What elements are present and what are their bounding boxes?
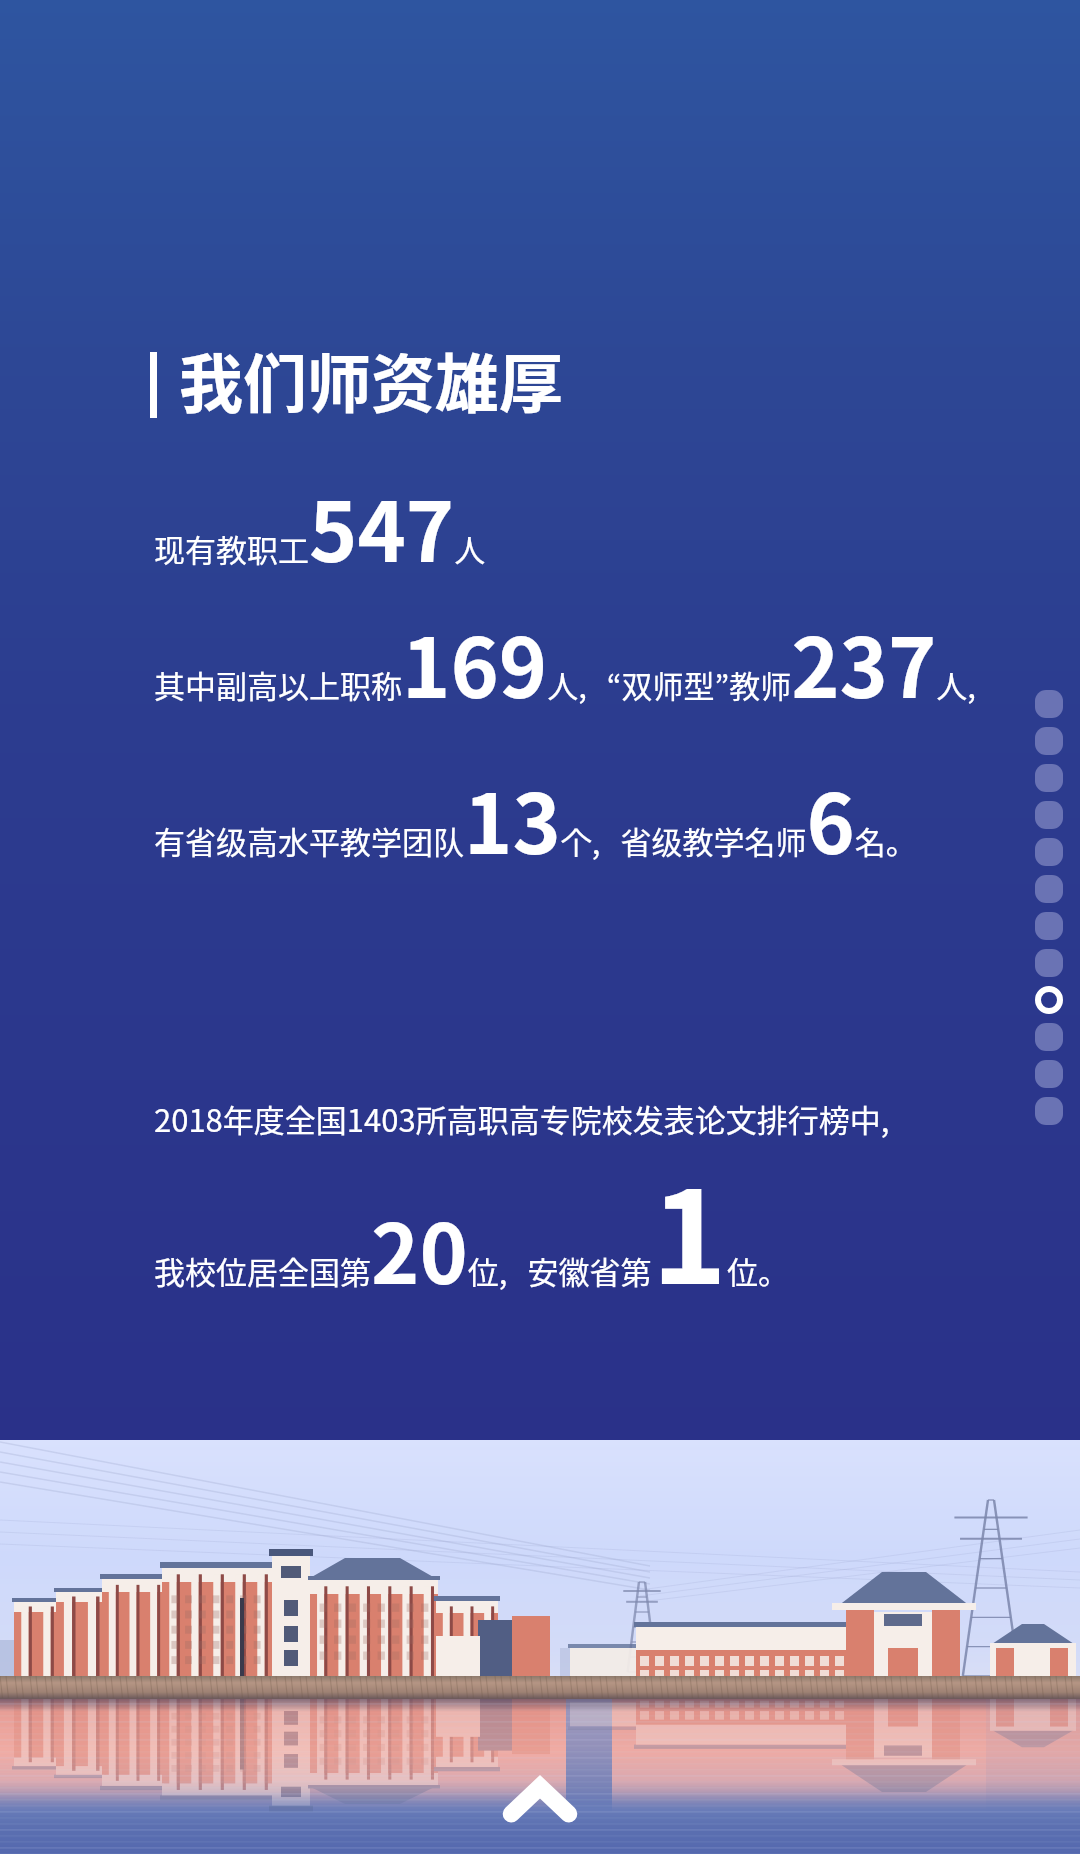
- staticText: 现有教职工547人: [154, 467, 486, 586]
- staticText: 2018年度全国1403所高职高专院校发表论文排行榜中,: [154, 1096, 910, 1141]
- staticText: 我校位居全国第20位, 安徽省第1位。: [154, 1136, 789, 1321]
- staticText: 其中副高以上职称169人, “双师型”教师237人,: [154, 603, 996, 722]
- button[interactable]: Scroll up: [500, 1766, 580, 1846]
- staticText: 有省级高水平教学团队13个, 省级教学名师6名。: [154, 759, 917, 878]
- staticText: 我们师资雄厚: [179, 333, 563, 426]
